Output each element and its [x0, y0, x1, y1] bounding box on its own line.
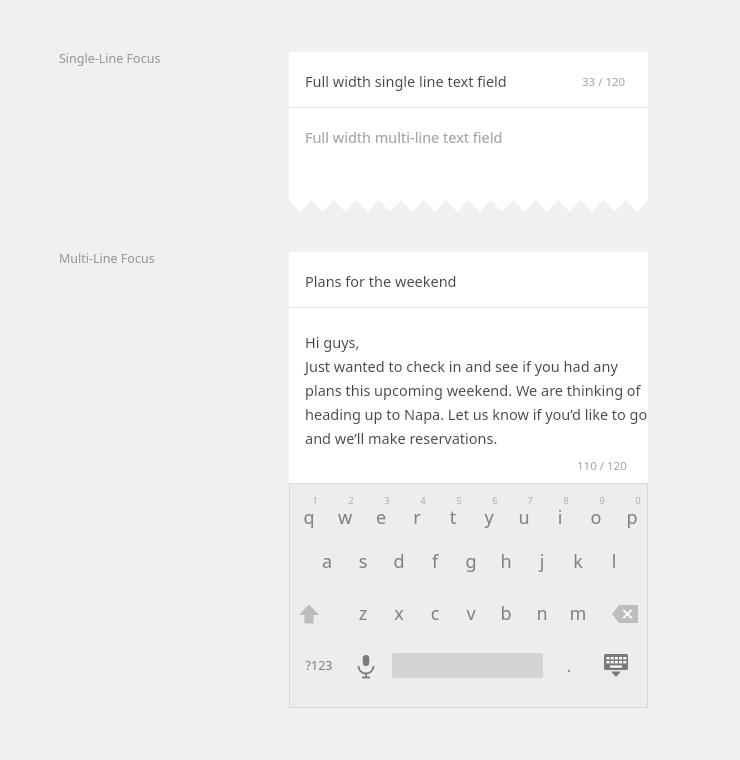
- staticText: 2: [333, 494, 369, 506]
- staticText: 5: [441, 494, 477, 506]
- button[interactable]: k: [560, 543, 596, 581]
- button[interactable]: 3: [363, 491, 399, 537]
- staticText: Multi-Line Focus: [59, 250, 155, 267]
- staticText: t: [435, 505, 471, 530]
- button[interactable]: ?123: [293, 645, 345, 685]
- button[interactable]: Full width single line text field: [289, 52, 648, 107]
- staticText: .: [551, 655, 587, 677]
- button[interactable]: f: [417, 543, 453, 581]
- staticText: 4: [405, 494, 441, 506]
- staticText: f: [417, 549, 453, 574]
- staticText: a: [309, 549, 345, 574]
- button[interactable]: m: [560, 595, 596, 633]
- button[interactable]: a: [309, 543, 345, 581]
- staticText: ?123: [293, 657, 345, 674]
- button[interactable]: 5: [435, 491, 471, 537]
- staticText: q: [291, 505, 327, 530]
- staticText: 0: [620, 494, 656, 506]
- button[interactable]: j: [524, 543, 560, 581]
- button[interactable]: 6: [471, 491, 507, 537]
- button[interactable]: b: [488, 595, 524, 633]
- staticText: s: [345, 549, 381, 574]
- staticText: p: [614, 505, 650, 530]
- staticText: Full width multi-line text field: [305, 127, 503, 147]
- button[interactable]: l: [596, 543, 632, 581]
- staticText: plans this upcoming weekend. We are thin…: [305, 380, 641, 400]
- button[interactable]: Voice input: [345, 645, 387, 685]
- button[interactable]: c: [417, 595, 453, 633]
- staticText: h: [488, 549, 524, 574]
- button[interactable]: Hide keyboard: [594, 645, 638, 685]
- button[interactable]: n: [524, 595, 560, 633]
- button[interactable]: z: [345, 595, 381, 633]
- button[interactable]: v: [453, 595, 489, 633]
- staticText: k: [560, 549, 596, 574]
- staticText: 33 / 120: [582, 74, 626, 90]
- staticText: n: [524, 601, 560, 626]
- staticText: e: [363, 505, 399, 530]
- staticText: 8: [548, 494, 584, 506]
- staticText: 7: [512, 494, 548, 506]
- button[interactable]: 2: [327, 491, 363, 537]
- staticText: w: [327, 505, 363, 530]
- button[interactable]: .: [551, 645, 587, 685]
- staticText: heading up to Napa. Let us know if you’d…: [305, 404, 648, 424]
- button[interactable]: Backspace: [607, 595, 643, 633]
- staticText: g: [453, 549, 489, 574]
- button[interactable]: d: [381, 543, 417, 581]
- staticText: Just wanted to check in and see if you h…: [305, 356, 618, 376]
- button[interactable]: s: [345, 543, 381, 581]
- staticText: c: [417, 601, 453, 626]
- staticText: d: [381, 549, 417, 574]
- staticText: o: [578, 505, 614, 530]
- staticText: 6: [477, 494, 513, 506]
- button[interactable]: Full width multi-line text field: [289, 108, 648, 200]
- button[interactable]: Hi guys,: [289, 308, 648, 483]
- staticText: i: [542, 505, 578, 530]
- button[interactable]: 4: [399, 491, 435, 537]
- button[interactable]: Plans for the weekend: [289, 252, 648, 307]
- staticText: Plans for the weekend: [305, 271, 457, 291]
- staticText: Hi guys,: [305, 332, 360, 352]
- button[interactable]: h: [488, 543, 524, 581]
- staticText: 110 / 120: [577, 458, 627, 474]
- button[interactable]: 0: [614, 491, 650, 537]
- staticText: b: [488, 601, 524, 626]
- staticText: m: [560, 601, 596, 626]
- staticText: j: [524, 549, 560, 574]
- button[interactable]: Shift: [291, 595, 327, 633]
- staticText: 9: [584, 494, 620, 506]
- button[interactable]: 1: [291, 491, 327, 537]
- staticText: y: [471, 505, 507, 530]
- staticText: x: [381, 601, 417, 626]
- button[interactable]: g: [453, 543, 489, 581]
- staticText: 1: [297, 494, 333, 506]
- staticText: z: [345, 601, 381, 626]
- button[interactable]: 7: [506, 491, 542, 537]
- staticText: v: [453, 601, 489, 626]
- staticText: and we’ll make reservations.: [305, 428, 498, 448]
- button[interactable]: 8: [542, 491, 578, 537]
- staticText: Single-Line Focus: [59, 50, 161, 67]
- button[interactable]: x: [381, 595, 417, 633]
- button[interactable]: 9: [578, 491, 614, 537]
- staticText: u: [506, 505, 542, 530]
- staticText: r: [399, 505, 435, 530]
- staticText: l: [596, 549, 632, 574]
- staticText: Full width single line text field: [305, 71, 507, 91]
- staticText: 3: [369, 494, 405, 506]
